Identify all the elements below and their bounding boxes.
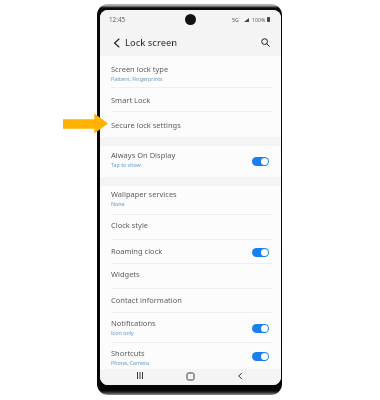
button[interactable]: Shortcuts xyxy=(100,343,281,369)
staticText: Phone, Camera xyxy=(111,359,150,366)
button[interactable]: Secure lock settings xyxy=(100,112,281,137)
button[interactable]: Always On Display xyxy=(100,146,281,177)
button[interactable]: Roaming clock xyxy=(100,240,281,264)
staticText: Wallpaper services xyxy=(111,189,177,199)
button[interactable]: Toggle Roaming clock xyxy=(252,248,269,257)
button[interactable]: Search xyxy=(259,36,272,49)
button[interactable]: Contact information xyxy=(100,289,281,313)
button[interactable]: Navigate up xyxy=(110,36,123,49)
staticText: Secure lock settings xyxy=(111,120,181,130)
button[interactable]: Screen lock type xyxy=(100,56,281,88)
staticText: 100% xyxy=(252,16,266,23)
button[interactable]: Wallpaper services xyxy=(100,186,281,215)
button[interactable]: Clock style xyxy=(100,215,281,240)
button[interactable]: Toggle Always On Display xyxy=(252,157,269,166)
staticText: Shortcuts xyxy=(111,348,145,358)
staticText: Pattern, Fingerprints xyxy=(111,75,163,82)
staticText: Roaming clock xyxy=(111,246,163,256)
staticText: None xyxy=(111,200,125,207)
button[interactable]: Home xyxy=(182,368,198,384)
staticText: Notifications xyxy=(111,318,156,328)
button[interactable]: Smart Lock xyxy=(100,88,281,112)
staticText: Clock style xyxy=(111,220,149,230)
staticText: 12:45 xyxy=(109,15,126,24)
staticText: 5G xyxy=(232,16,239,23)
staticText: Always On Display xyxy=(111,150,176,160)
staticText: Lock screen xyxy=(125,36,178,49)
staticText: Widgets xyxy=(111,269,140,279)
button[interactable]: Toggle Notifications xyxy=(252,324,269,333)
button[interactable]: Notifications xyxy=(100,313,281,343)
staticText: Smart Lock xyxy=(111,95,151,105)
button[interactable]: Back xyxy=(232,368,248,384)
staticText: Tap to show xyxy=(111,161,141,168)
staticText: Screen lock type xyxy=(111,64,169,74)
button[interactable]: Recent apps xyxy=(132,367,148,383)
button[interactable]: Widgets xyxy=(100,264,281,289)
staticText: Icon only xyxy=(111,329,134,336)
button[interactable]: Toggle Shortcuts xyxy=(252,352,269,361)
staticText: Contact information xyxy=(111,295,182,305)
